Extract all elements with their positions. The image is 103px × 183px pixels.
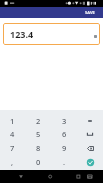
button[interactable]: 6 [51, 127, 77, 141]
staticText: 7 [10, 143, 15, 153]
button[interactable]: Back [0, 170, 35, 183]
button[interactable]: Home [35, 170, 69, 183]
staticText: 4 [10, 129, 15, 139]
button[interactable]: 123.4 [3, 23, 100, 45]
button[interactable]: 1 [0, 114, 25, 127]
other: Backspace [86, 144, 95, 153]
button[interactable]: . [51, 155, 77, 169]
button[interactable]: 4 [0, 127, 25, 141]
button[interactable]: SAVE [78, 7, 103, 18]
button[interactable]: 0 [25, 155, 51, 169]
other: Clear [94, 35, 97, 38]
staticText: , [11, 157, 14, 167]
other: Confirm [85, 157, 96, 168]
button[interactable]: 8 [25, 141, 51, 155]
staticText: 1 [10, 116, 15, 126]
staticText: 3 [62, 116, 67, 126]
staticText: 0 [36, 157, 41, 167]
button[interactable]: 3 [51, 114, 77, 127]
staticText: 123.4 [10, 28, 34, 40]
staticText: . [63, 157, 66, 167]
button[interactable]: Space [77, 127, 103, 141]
staticText: 8 [36, 143, 41, 153]
button[interactable]: 9 [51, 141, 77, 155]
staticText: SAVE [85, 10, 95, 16]
button[interactable]: , [0, 155, 25, 169]
other: Space [86, 130, 94, 138]
staticText: 6 [62, 129, 67, 139]
button[interactable]: 7 [0, 141, 25, 155]
staticText: 5 [36, 129, 41, 139]
staticText: 2 [36, 116, 41, 126]
button[interactable]: 2 [25, 114, 51, 127]
button[interactable]: Recents [69, 170, 103, 183]
other: Minus [86, 117, 94, 125]
button[interactable]: Confirm [77, 155, 103, 169]
staticText: 9 [62, 143, 67, 153]
button[interactable]: Backspace [77, 141, 103, 155]
button[interactable]: 5 [25, 127, 51, 141]
button[interactable]: Minus [77, 114, 103, 127]
